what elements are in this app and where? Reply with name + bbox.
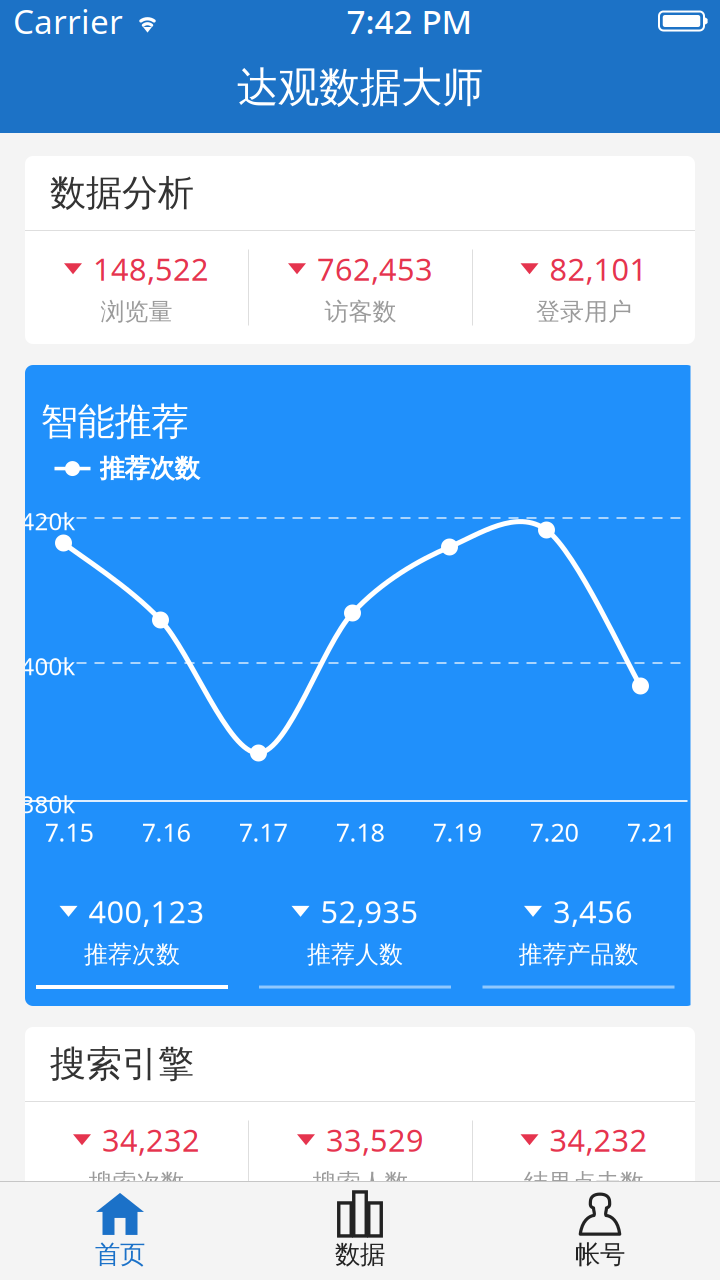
staticText: 智能推荐 <box>40 399 188 445</box>
staticText: 7.20 <box>529 815 578 849</box>
staticText: 34,232 <box>102 1119 200 1160</box>
staticText: 400,123 <box>88 891 204 932</box>
staticText: 7.21 <box>626 815 675 849</box>
staticText: 搜索人数 <box>312 1168 408 1198</box>
staticText: 访客数 <box>324 297 396 327</box>
staticText: 推荐次数 <box>84 940 180 969</box>
staticText: 7.17 <box>238 815 287 849</box>
staticText: 3,456 <box>553 891 633 932</box>
staticText: 400k <box>20 650 75 682</box>
staticText: 推荐人数 <box>307 940 403 969</box>
button[interactable]: 首页 <box>0 1182 240 1280</box>
staticText: 7.19 <box>432 815 481 849</box>
staticText: 7.15 <box>44 815 93 849</box>
staticText: 420k <box>20 505 75 537</box>
staticText: 7:42 PM <box>346 0 472 43</box>
staticText: 380k <box>20 788 75 820</box>
button[interactable]: 帐号 <box>480 1182 720 1280</box>
staticText: 首页 <box>95 1239 145 1270</box>
staticText: 达观数据大师 <box>237 62 483 113</box>
staticText: 结果点击数 <box>524 1168 644 1198</box>
staticText: Carrier <box>13 0 123 43</box>
staticText: 34,232 <box>549 1119 647 1160</box>
staticText: 推荐产品数 <box>518 940 638 969</box>
staticText: 148,522 <box>93 248 209 289</box>
staticText: 数据分析 <box>50 171 194 215</box>
staticText: 帐号 <box>575 1239 625 1270</box>
staticText: 数据 <box>335 1239 385 1270</box>
staticText: 762,453 <box>317 248 433 289</box>
staticText: 浏览量 <box>100 297 172 327</box>
staticText: 52,935 <box>320 891 418 932</box>
staticText: 搜索引擎 <box>50 1042 194 1086</box>
staticText: 7.16 <box>141 815 190 849</box>
staticText: 7.18 <box>335 815 384 849</box>
staticText: 33,529 <box>326 1119 424 1160</box>
button[interactable]: 数据 <box>240 1182 480 1280</box>
staticText: 推荐次数 <box>99 453 199 484</box>
staticText: 搜索次数 <box>88 1168 184 1198</box>
staticText: 登录用户 <box>536 297 632 327</box>
staticText: 82,101 <box>549 248 647 289</box>
